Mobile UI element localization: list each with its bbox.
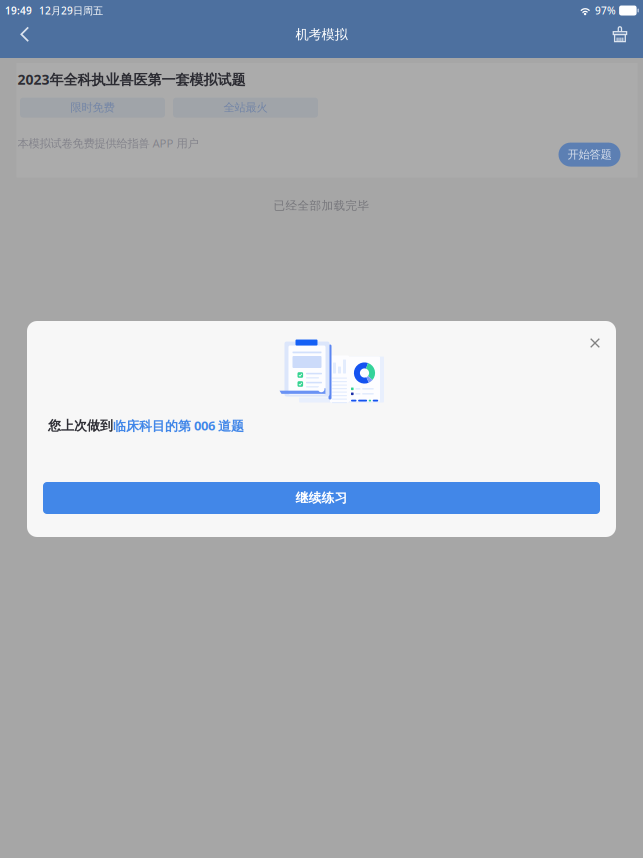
- staticText: 全站最火: [223, 101, 267, 114]
- staticText: 限时免费: [70, 101, 114, 114]
- button[interactable]: Clear record: [597, 21, 643, 48]
- staticText: 2023年全科执业兽医第一套模拟试题: [17, 70, 245, 89]
- staticText: 已经全部加载完毕: [273, 199, 369, 213]
- staticText: 本模拟试卷免费提供给指兽 APP 用户: [17, 136, 198, 151]
- staticText: 临床科目的第 006 道题: [113, 417, 244, 434]
- staticText: 您上次做到: [48, 418, 113, 433]
- staticText: 开始答题: [567, 148, 611, 161]
- staticText: 机考模拟: [295, 26, 347, 43]
- staticText: 12月29日周五: [39, 4, 103, 17]
- button[interactable]: 继续练习: [43, 482, 600, 514]
- button[interactable]: Back: [0, 21, 50, 48]
- button[interactable]: Close: [578, 328, 612, 358]
- staticText: 19:49: [5, 4, 32, 17]
- button[interactable]: 开始答题: [558, 136, 620, 167]
- staticText: 继续练习: [295, 490, 347, 506]
- staticText: 97%: [595, 4, 616, 17]
